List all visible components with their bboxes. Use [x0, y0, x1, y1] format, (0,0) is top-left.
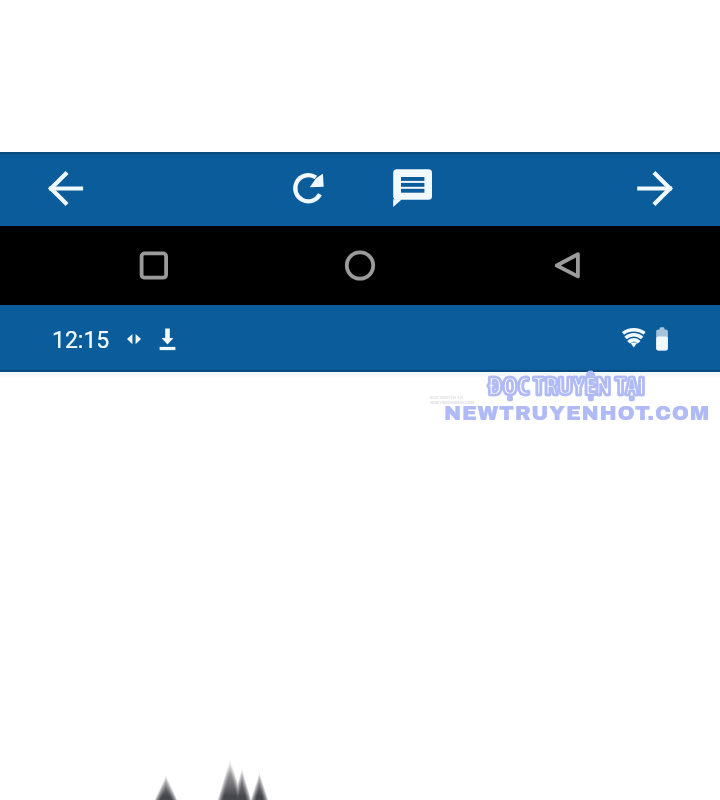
staticText: NEWTRUYENHOT.COM: [444, 402, 710, 425]
button[interactable]: Comments: [376, 152, 450, 226]
button[interactable]: Home: [320, 226, 400, 305]
staticText: ĐỌC TRUYỆN TẠI NEWTRUYENHOT.COM: [430, 395, 475, 404]
button[interactable]: Back: [16, 152, 116, 226]
button[interactable]: Back: [527, 226, 607, 305]
button[interactable]: Refresh: [270, 152, 344, 226]
staticText: ĐỌC TRUYỆN TẠI: [488, 371, 645, 400]
button[interactable]: Forward: [604, 152, 704, 226]
staticText: 12:15: [52, 327, 110, 354]
button[interactable]: Recent apps: [114, 226, 194, 305]
